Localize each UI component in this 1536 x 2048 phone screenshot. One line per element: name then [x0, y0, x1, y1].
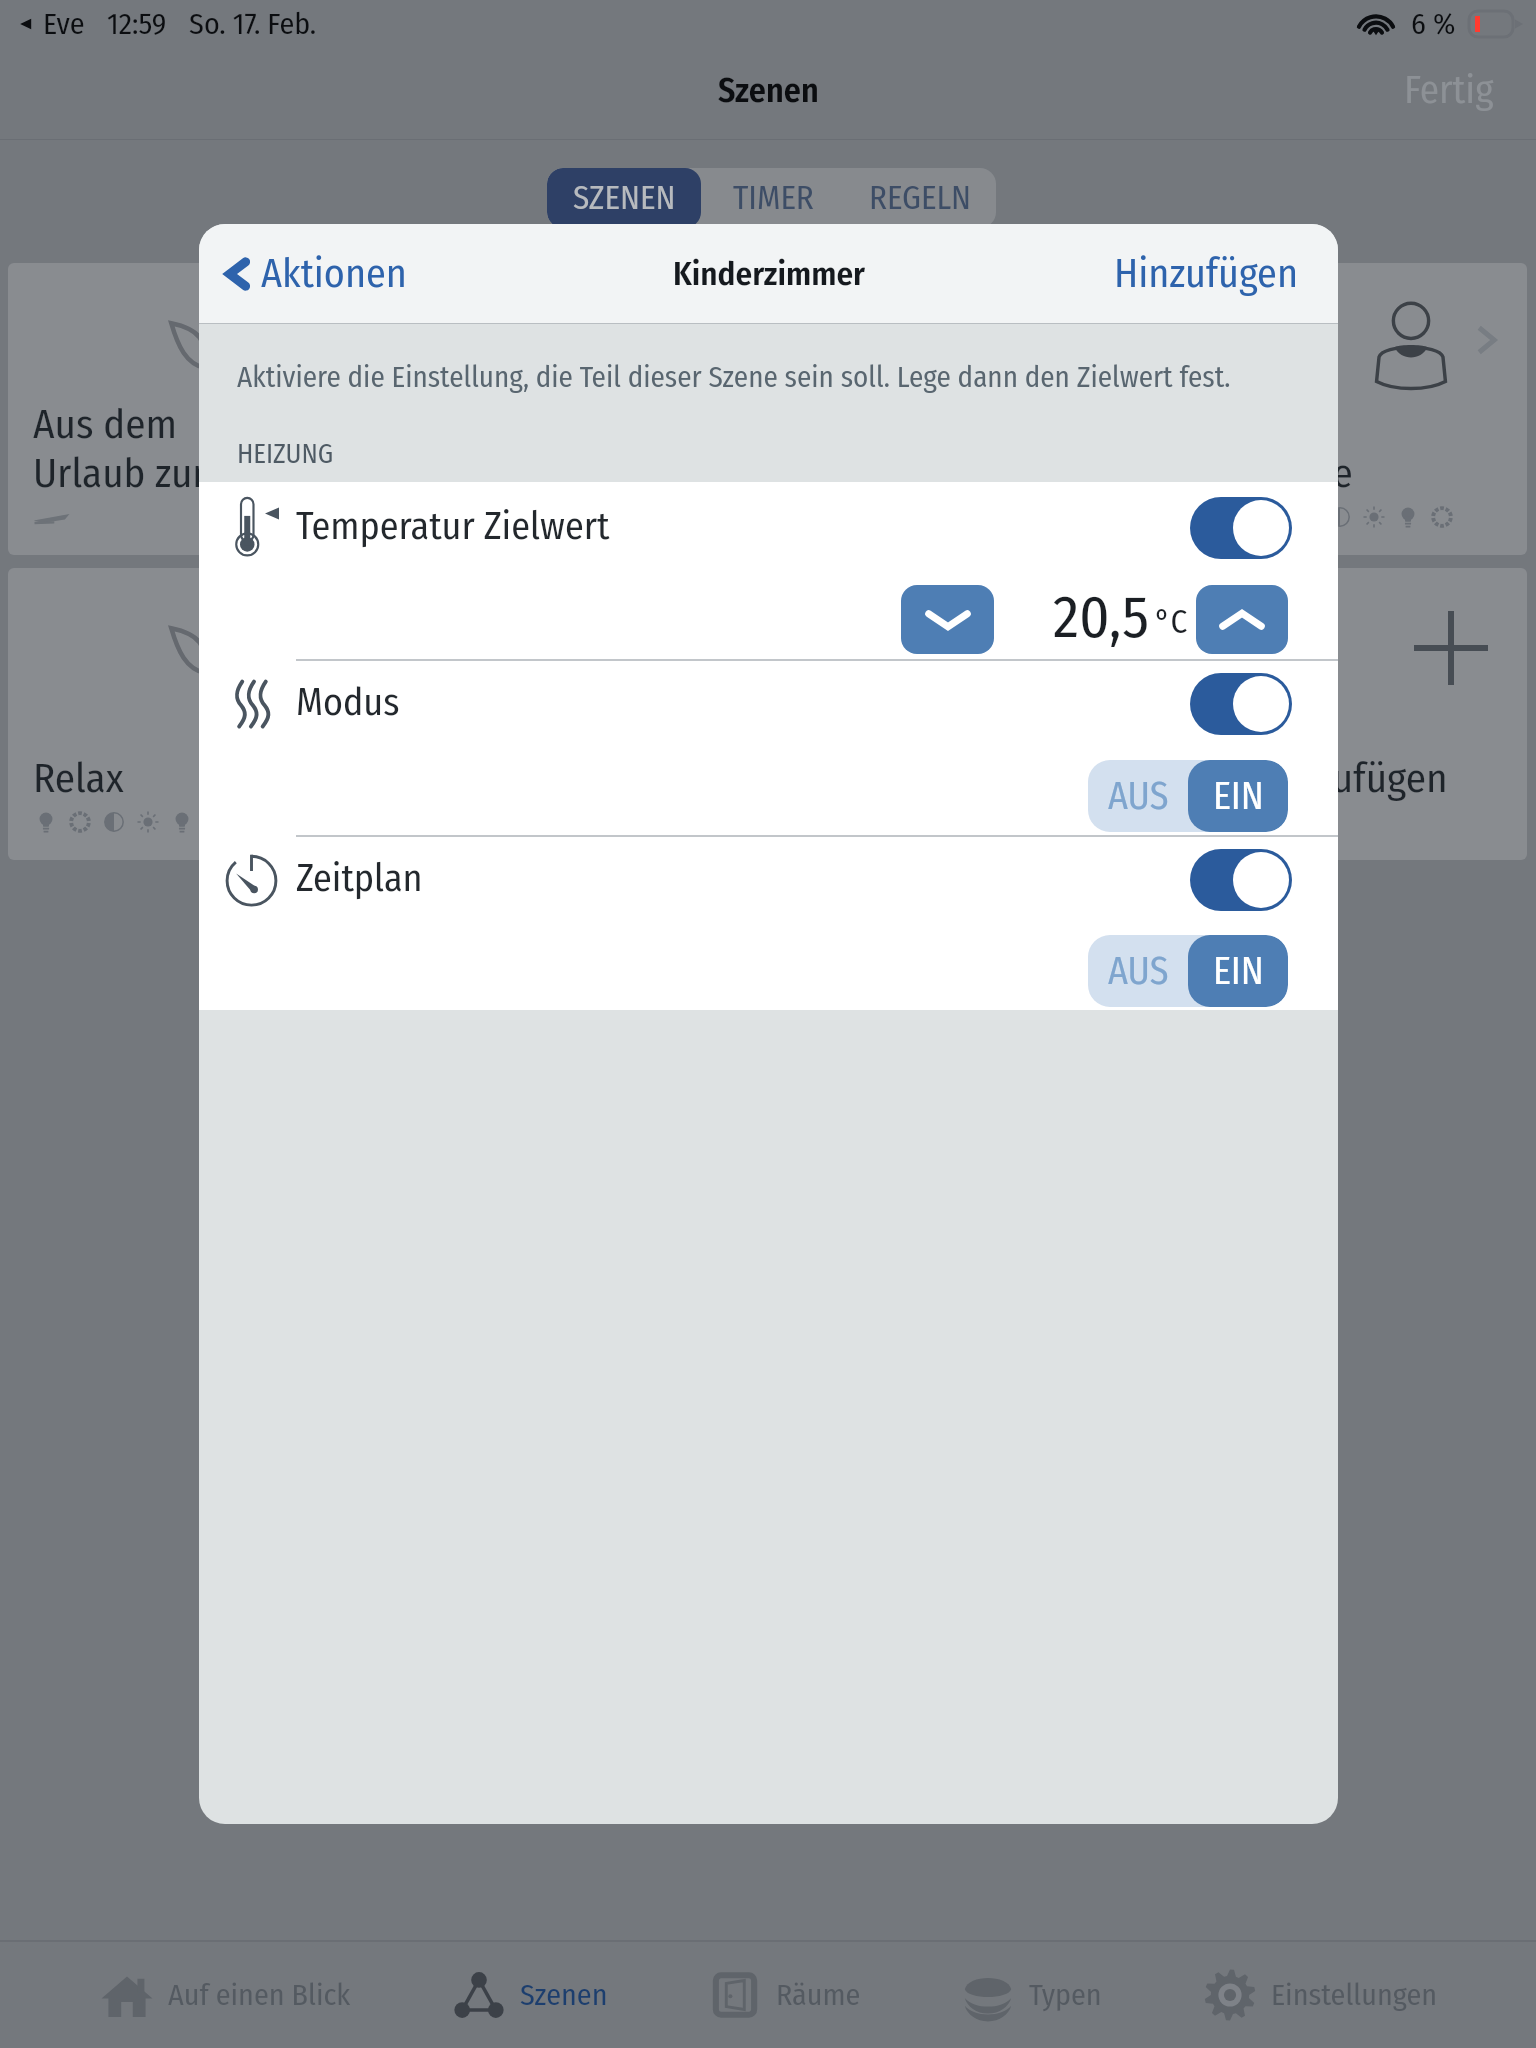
staticText: AUS: [1108, 773, 1169, 819]
button[interactable]: Toggle: [1190, 849, 1292, 911]
staticText: Eve: [43, 6, 85, 42]
staticText: Auf einen Blick: [168, 1977, 351, 2013]
staticText: Temperatur Zielwert: [296, 503, 610, 549]
staticText: °C: [1155, 602, 1188, 642]
staticText: Aktiviere die Einstellung, die Teil dies…: [237, 360, 1231, 395]
button[interactable]: Fernsehen: [622, 568, 915, 860]
button[interactable]: Arbeiten: [928, 263, 1221, 555]
staticText: REGELN: [869, 178, 972, 218]
staticText: 12:59: [107, 6, 167, 42]
staticText: Einstellungen: [1271, 1977, 1438, 2013]
staticText: Kinderzimmer: [673, 254, 865, 294]
button[interactable]: Auf einen Blick: [98, 1942, 351, 2048]
button[interactable]: AUS: [1088, 760, 1188, 832]
staticText: 6 %: [1411, 6, 1456, 42]
button[interactable]: SZENEN: [547, 168, 701, 228]
staticText: Zeitplan: [296, 855, 423, 901]
staticText: Szenen: [718, 70, 819, 111]
button[interactable]: Szenen: [450, 1942, 608, 2048]
staticText: Aktionen: [261, 250, 407, 298]
button[interactable]: AUS: [1088, 935, 1188, 1007]
button[interactable]: Relax: [8, 568, 302, 860]
button[interactable]: Toggle: [1190, 497, 1292, 559]
button[interactable]: Guten Morgen: [315, 263, 609, 555]
staticText: EIN: [1213, 773, 1264, 819]
button[interactable]: REGELN: [845, 168, 996, 228]
button[interactable]: TIMER: [701, 168, 845, 228]
staticText: Arbeiten: [953, 449, 1096, 498]
staticText: Gäste: [1259, 449, 1353, 498]
button[interactable]: Gäste: [1234, 263, 1527, 555]
button[interactable]: Hinzufügen: [1114, 250, 1298, 298]
staticText: Relax: [33, 754, 124, 803]
staticText: 20,5: [1053, 582, 1150, 647]
button[interactable]: Typen: [959, 1942, 1102, 2048]
staticText: So. 17. Feb.: [189, 6, 317, 42]
staticText: Guten Morgen: [340, 449, 575, 498]
button[interactable]: Aus dem Urlaub zurück: [8, 263, 302, 555]
button[interactable]: Gute Nacht: [622, 263, 915, 555]
staticText: SZENEN: [573, 178, 676, 218]
staticText: Modus: [296, 679, 400, 725]
button[interactable]: Gäste: [928, 568, 1221, 860]
staticText: EIN: [1213, 948, 1264, 994]
staticText: Szenen: [520, 1977, 608, 2013]
button[interactable]: Toggle: [1190, 673, 1292, 735]
button[interactable]: Aktionen: [219, 250, 407, 298]
staticText: Räume: [776, 1977, 861, 2013]
button[interactable]: Hinzufügen: [1234, 568, 1527, 860]
staticText: TIMER: [733, 178, 814, 218]
button[interactable]: Decrease temperature: [901, 585, 994, 654]
button[interactable]: EIN: [1188, 760, 1288, 832]
staticText: HEIZUNG: [237, 438, 334, 470]
staticText: AUS: [1108, 948, 1169, 994]
staticText: Fertig: [1404, 67, 1494, 114]
button[interactable]: Räume: [706, 1942, 861, 2048]
button[interactable]: Increase temperature: [1196, 585, 1288, 654]
staticText: Hinzufügen: [1114, 250, 1298, 298]
button[interactable]: Fertig: [1404, 67, 1494, 114]
staticText: Aus dem Urlaub zurück: [33, 400, 265, 498]
staticText: Gute Nacht: [647, 449, 833, 498]
button[interactable]: Einstellungen: [1201, 1942, 1438, 2048]
button[interactable]: EIN: [1188, 935, 1288, 1007]
button[interactable]: Gehen: [315, 568, 609, 860]
staticText: Typen: [1029, 1977, 1102, 2013]
staticText: Hinzufügen: [1259, 754, 1448, 803]
